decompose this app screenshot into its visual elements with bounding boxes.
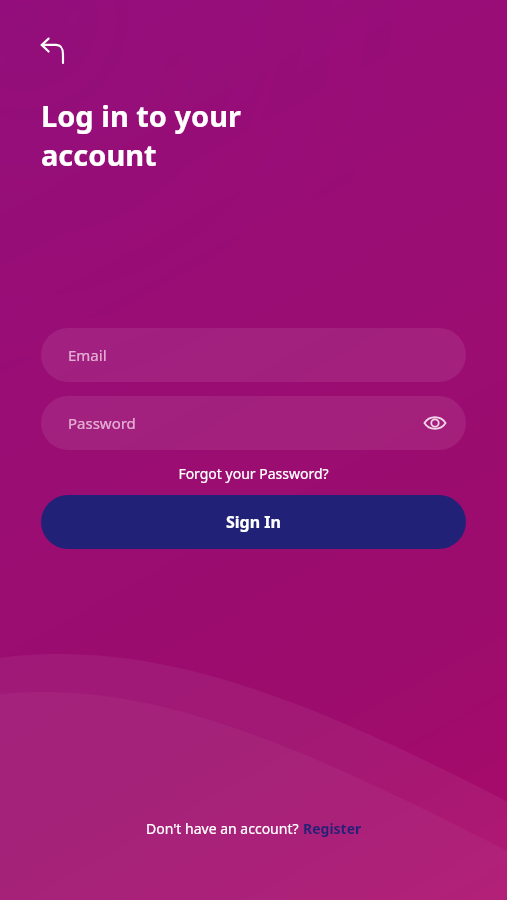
staticText: Forgot your Password? <box>178 464 329 483</box>
staticText: Register <box>303 819 362 838</box>
button[interactable]: Back <box>30 26 78 74</box>
button[interactable]: Sign In <box>41 495 466 549</box>
button[interactable]: Email <box>41 328 466 382</box>
staticText: Sign In <box>226 511 281 533</box>
staticText: Log in to your account <box>41 96 242 174</box>
staticText: Password <box>68 413 136 433</box>
button[interactable]: Register <box>303 819 362 838</box>
button[interactable]: Show password <box>414 402 456 444</box>
button[interactable]: Password <box>41 396 466 450</box>
staticText: Don't have an account? <box>146 819 303 838</box>
staticText: Email <box>68 345 107 365</box>
button[interactable]: Forgot your Password? <box>170 460 337 487</box>
